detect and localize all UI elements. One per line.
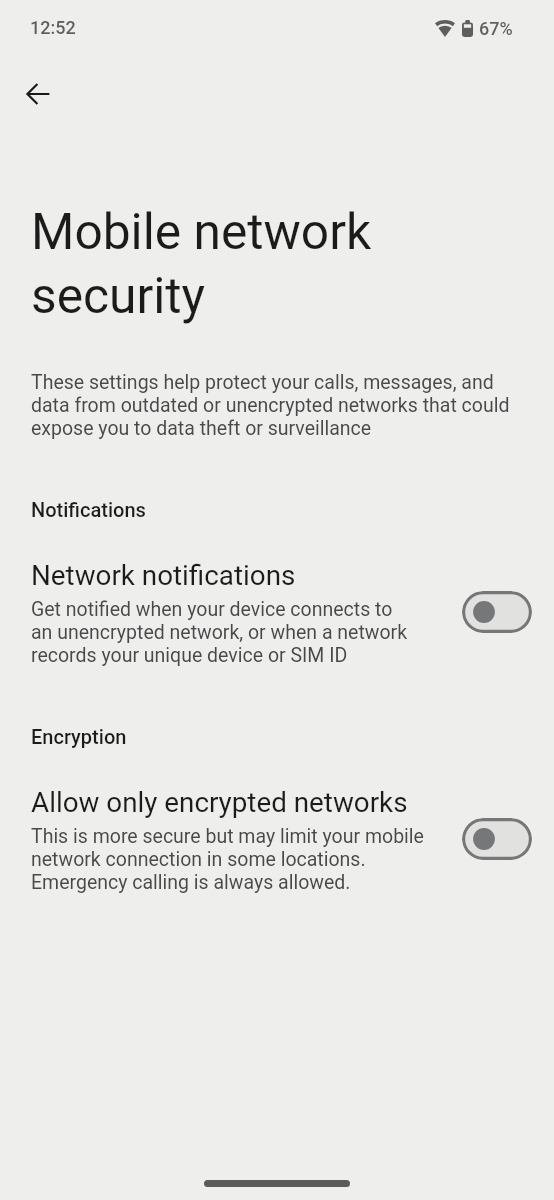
button[interactable]: Back <box>15 70 63 118</box>
staticText: These settings help protect your calls, … <box>31 370 531 439</box>
staticText: Encryption <box>31 725 127 748</box>
button[interactable]: Network notifications, off <box>462 591 532 633</box>
staticText: 67% <box>479 18 513 39</box>
staticText: Network notifications <box>31 560 296 592</box>
button[interactable]: Network notifications <box>0 546 554 664</box>
staticText: Get notified when your device connects t… <box>31 598 414 667</box>
staticText: This is more secure but may limit your m… <box>31 825 431 894</box>
button[interactable]: Allow only encrypted networks, off <box>462 818 532 860</box>
staticText: Mobile network security <box>31 198 372 326</box>
button[interactable]: Allow only encrypted networks <box>0 773 554 891</box>
staticText: Allow only encrypted networks <box>31 787 408 819</box>
staticText: Notifications <box>31 498 146 521</box>
staticText: 12:52 <box>30 17 76 38</box>
